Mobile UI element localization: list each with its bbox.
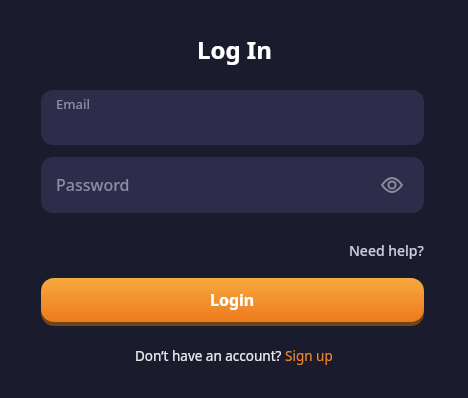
button[interactable]: Sign up xyxy=(285,347,333,365)
staticText: Email xyxy=(56,95,91,113)
staticText: Log In xyxy=(197,33,272,66)
staticText: Login xyxy=(210,289,255,311)
staticText: Sign up xyxy=(285,347,333,365)
button[interactable]: Password xyxy=(41,157,424,213)
staticText: Password xyxy=(56,174,130,196)
button[interactable]: Need help? xyxy=(349,241,424,260)
staticText: Need help? xyxy=(349,241,424,260)
staticText: Don’t have an account? xyxy=(135,347,285,365)
button[interactable]: Login xyxy=(41,278,424,322)
button[interactable]: Email xyxy=(41,90,424,145)
